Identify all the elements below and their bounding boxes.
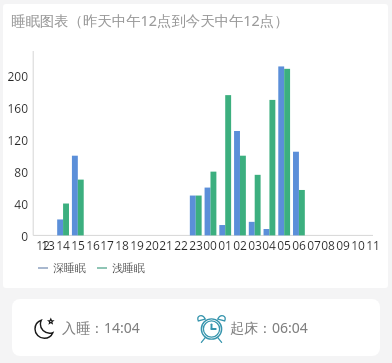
- staticText: 起床：06:04: [230, 318, 308, 337]
- staticText: 21: [156, 237, 176, 252]
- staticText: 16: [83, 237, 103, 252]
- staticText: 120: [0, 132, 28, 147]
- staticText: 40: [0, 196, 28, 211]
- button[interactable]: Bedtime: [12, 299, 380, 356]
- staticText: 0: [0, 228, 28, 243]
- other: Bedtime: [35, 318, 55, 338]
- staticText: 15: [68, 237, 88, 252]
- staticText: 03: [245, 237, 265, 252]
- staticText: 04: [259, 237, 279, 252]
- staticText: 05: [274, 237, 294, 252]
- staticText: 23: [186, 237, 206, 252]
- staticText: 浅睡眠: [112, 261, 145, 275]
- staticText: 20: [142, 237, 162, 252]
- staticText: 18: [112, 237, 132, 252]
- staticText: 200: [0, 68, 28, 83]
- staticText: 80: [0, 164, 28, 179]
- staticText: 22: [171, 237, 191, 252]
- other: Wake up: [198, 314, 225, 341]
- staticText: 入睡：14:04: [62, 318, 140, 337]
- staticText: 160: [0, 100, 28, 115]
- staticText: 12: [33, 237, 53, 252]
- staticText: 08: [318, 237, 338, 252]
- staticText: 01: [215, 237, 235, 252]
- staticText: 02: [230, 237, 250, 252]
- staticText: 07: [304, 237, 324, 252]
- staticText: 17: [97, 237, 117, 252]
- staticText: 19: [127, 237, 147, 252]
- staticText: 10: [348, 237, 368, 252]
- staticText: 00: [200, 237, 220, 252]
- staticText: 深睡眠: [53, 261, 86, 275]
- staticText: 06: [289, 237, 309, 252]
- staticText: 睡眠图表（昨天中午12点到今天中午12点）: [11, 11, 289, 31]
- staticText: 11: [363, 237, 383, 252]
- staticText: 14: [53, 237, 73, 252]
- staticText: 09: [333, 237, 353, 252]
- staticText: 13: [38, 237, 58, 252]
